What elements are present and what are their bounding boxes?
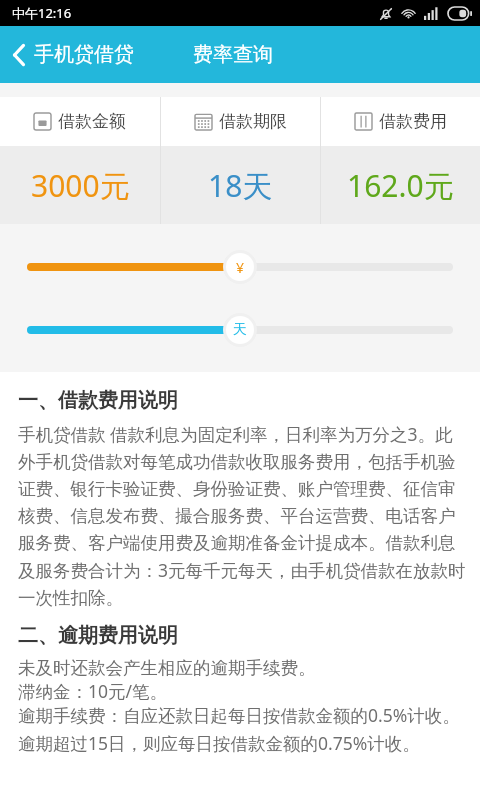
staticText: 中午12:16 xyxy=(12,4,72,22)
staticText: ¥ xyxy=(236,258,245,277)
staticText: 18天 xyxy=(208,165,273,206)
button[interactable]: 返回 手机贷借贷 xyxy=(0,34,144,75)
staticText: 借款费用 xyxy=(379,111,447,132)
staticText: 逾期手续费：自应还款日起每日按借款金额的0.5%计收。逾期超过15日，则应每日按… xyxy=(18,703,466,755)
staticText: 天 xyxy=(233,321,247,339)
staticText: 借款期限 xyxy=(219,111,287,132)
button[interactable]: 借款期限滑块 xyxy=(0,313,480,347)
staticText: 二、逾期费用说明 xyxy=(18,623,178,648)
staticText: 手机贷借款 借款利息为固定利率，日利率为万分之3。此外手机贷借款对每笔成功借款收… xyxy=(18,422,466,609)
button[interactable]: 借款金额滑块 xyxy=(0,250,480,284)
staticText: 费率查询 xyxy=(193,42,273,67)
staticText: 未及时还款会产生相应的逾期手续费。 xyxy=(18,657,316,679)
staticText: 3000元 xyxy=(31,165,130,206)
staticText: 手机贷借贷 xyxy=(34,42,134,67)
staticText: 滞纳金：10元/笔。 xyxy=(18,679,168,703)
staticText: 162.0元 xyxy=(347,165,454,206)
staticText: 一、借款费用说明 xyxy=(18,388,178,413)
staticText: 借款金额 xyxy=(58,111,126,132)
